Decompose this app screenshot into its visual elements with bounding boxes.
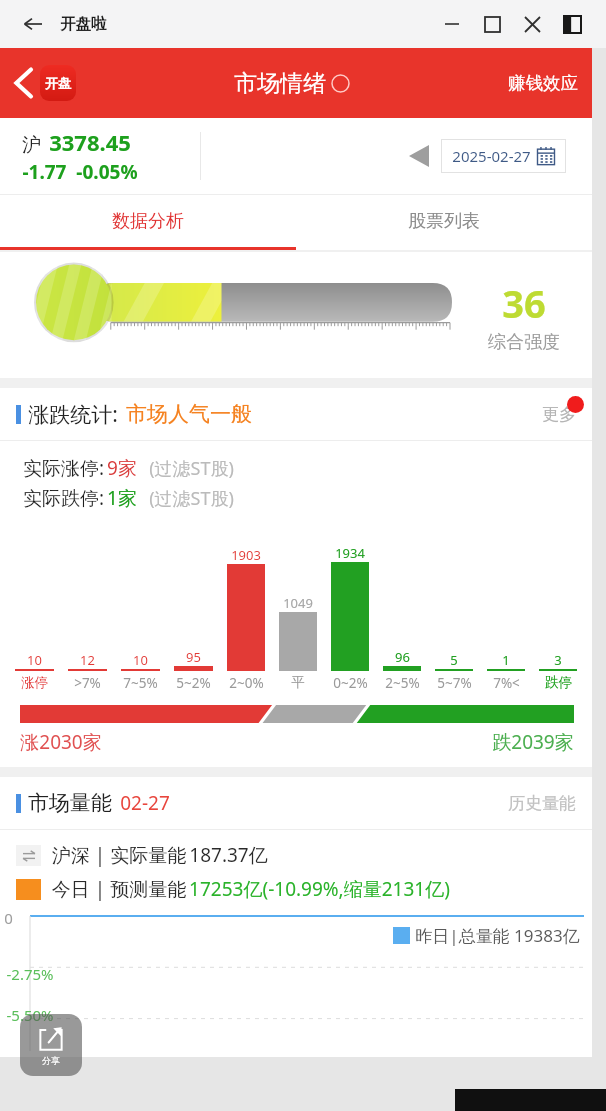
staticText: 今日 | 预测量能 — [49, 876, 189, 902]
staticText: 跌2039家 — [492, 729, 574, 755]
staticText: 数据分析 — [112, 210, 184, 233]
staticText: 综合强度 — [488, 331, 560, 354]
staticText: 沪深 | 实际量能 — [49, 842, 189, 868]
staticText: 1934 — [335, 544, 365, 562]
staticText: 17253亿(-10.99%,缩量2131亿) — [189, 876, 450, 902]
button[interactable]: 分享 — [20, 1014, 82, 1076]
staticText: (过滤ST股) — [149, 486, 234, 511]
staticText: 5 — [450, 651, 458, 669]
staticText: 市场人气一般 — [126, 401, 252, 427]
staticText: -1.77 -0.05% — [22, 159, 138, 185]
staticText: 187.37亿 — [189, 842, 268, 868]
button[interactable]: 股票列表 — [296, 195, 592, 247]
button[interactable]: 返回 开盘 — [14, 65, 76, 101]
staticText: 1903 — [231, 546, 261, 564]
staticText: 平 — [291, 674, 305, 691]
staticText: 9家 — [107, 455, 137, 481]
staticText: 分享 — [42, 1055, 60, 1066]
staticText: 7%< — [493, 674, 520, 692]
staticText: 开盘 — [45, 75, 71, 91]
staticText: 7~5% — [123, 674, 158, 692]
staticText: 96 — [395, 648, 410, 666]
staticText: 跌停 — [545, 674, 572, 691]
staticText: 36 — [502, 277, 546, 329]
staticText: 市场量能 — [28, 790, 112, 816]
staticText: 2~0% — [229, 674, 264, 692]
staticText: 2025-02-27 — [452, 146, 531, 166]
staticText: -5.50% — [6, 1005, 54, 1025]
staticText: 涨2030家 — [20, 729, 102, 755]
button[interactable]: 更多 — [542, 404, 576, 425]
staticText: >7% — [74, 674, 101, 692]
button[interactable]: Close — [512, 4, 552, 44]
button[interactable]: 沪 — [22, 127, 200, 185]
staticText: 涨停 — [21, 674, 48, 691]
button[interactable]: 市场情绪 说明 — [234, 69, 350, 98]
staticText: 5~2% — [176, 674, 211, 692]
staticText: 2~5% — [385, 674, 420, 692]
staticText: 赚钱效应 — [508, 72, 578, 94]
staticText: 历史量能 — [508, 793, 576, 814]
staticText: 股票列表 — [408, 210, 480, 233]
button[interactable]: Maximize — [472, 4, 512, 44]
staticText: 3 — [554, 651, 562, 669]
staticText: 95 — [186, 648, 201, 666]
staticText: 10 — [133, 651, 148, 669]
staticText: 10 — [27, 651, 42, 669]
staticText: 12 — [80, 651, 95, 669]
staticText: 02-27 — [120, 790, 170, 816]
staticText: -2.75% — [6, 964, 54, 984]
staticText: 昨日|总量能 19383亿 — [415, 924, 580, 947]
button[interactable]: Split screen — [552, 4, 592, 44]
button[interactable]: 市场量能 — [16, 777, 576, 829]
button[interactable]: 2025-02-27 — [452, 139, 555, 173]
staticText: (过滤ST股) — [149, 456, 234, 481]
button[interactable]: 数据分析 — [0, 195, 296, 247]
button[interactable] — [409, 145, 429, 167]
staticText: 实际跌停: — [20, 485, 107, 511]
button[interactable]: 赚钱效应 — [508, 72, 578, 94]
staticText: 市场情绪 — [234, 69, 326, 98]
button[interactable]: Minimize — [432, 4, 472, 44]
button[interactable]: Back — [18, 9, 48, 39]
staticText: 1049 — [283, 594, 313, 612]
staticText: 开盘啦 — [60, 14, 107, 34]
staticText: 0 — [4, 908, 13, 928]
staticText: 实际涨停: — [20, 455, 107, 481]
staticText: 1家 — [107, 485, 137, 511]
staticText: 3378.45 — [49, 127, 131, 157]
staticText: 5~7% — [437, 674, 472, 692]
staticText: 涨跌统计: — [28, 400, 118, 429]
staticText: 1 — [502, 651, 510, 669]
staticText: 沪 — [22, 133, 41, 157]
staticText: 更多 — [542, 404, 576, 425]
staticText: 0~2% — [333, 674, 368, 692]
